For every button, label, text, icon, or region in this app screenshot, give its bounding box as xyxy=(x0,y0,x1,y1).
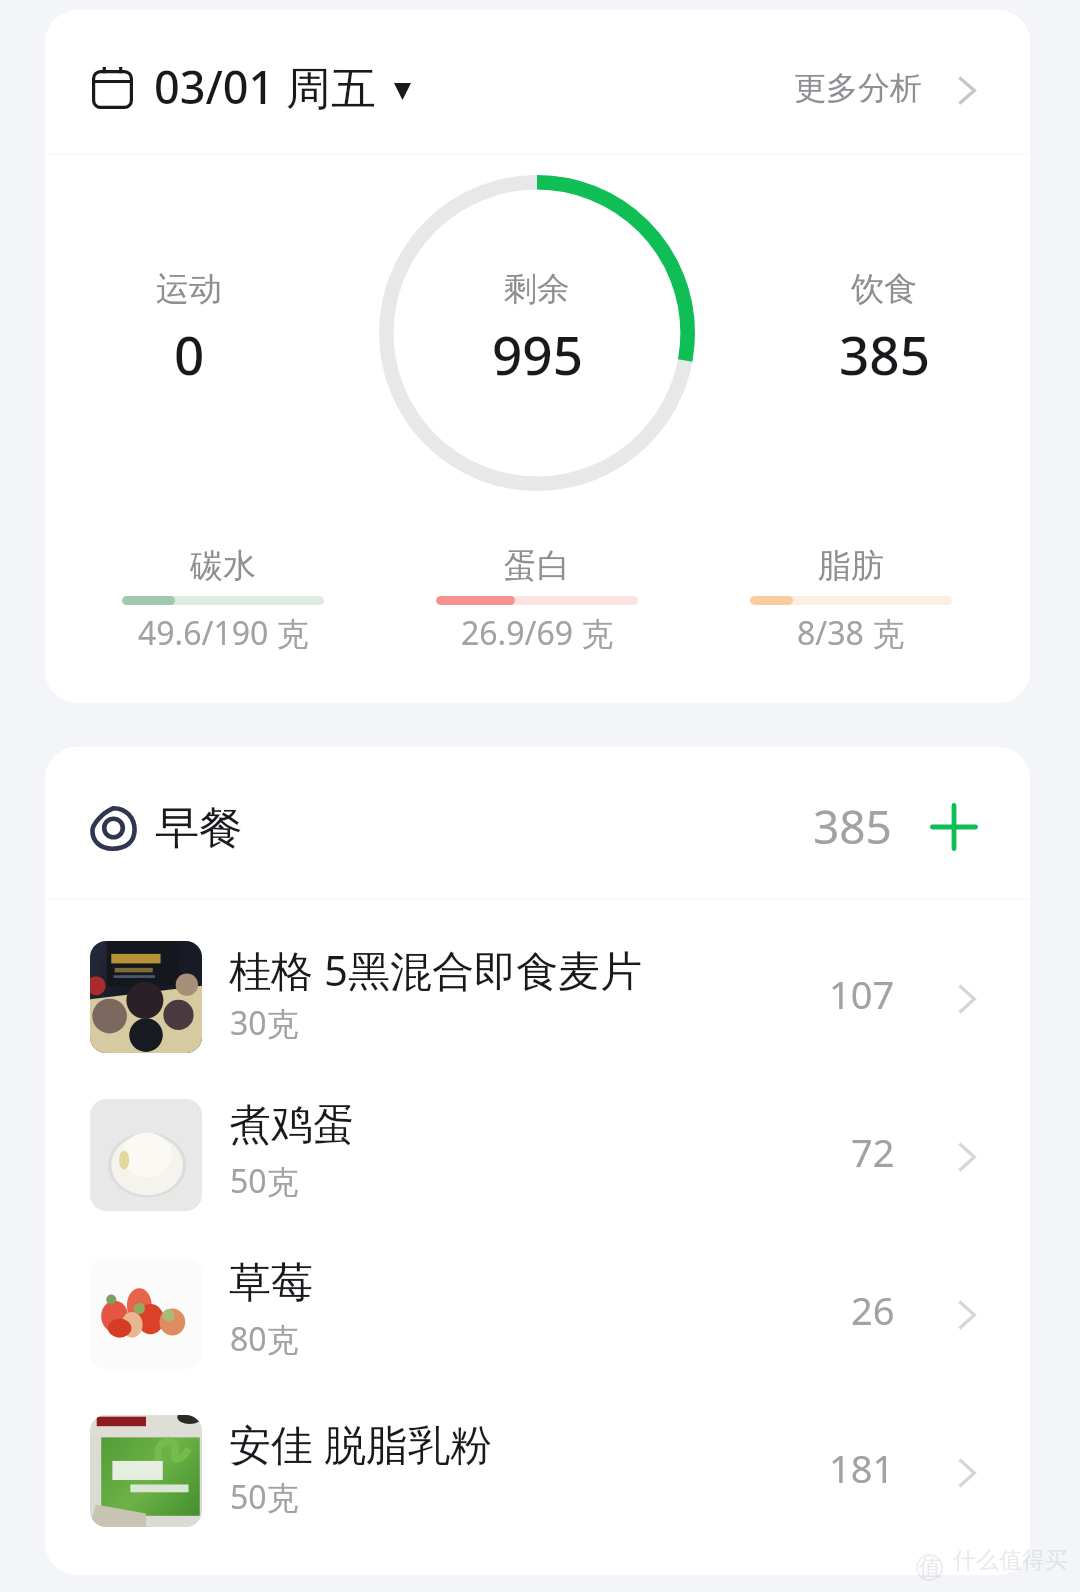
staticText: 剩余 xyxy=(504,268,570,310)
staticText: 早餐 xyxy=(155,801,243,856)
staticText: 蛋白 xyxy=(504,545,570,587)
staticText: 80克 xyxy=(230,1317,299,1361)
button[interactable]: 煮鸡蛋 xyxy=(45,1076,1030,1234)
staticText: 30克 xyxy=(230,1001,299,1045)
button[interactable]: Add breakfast food xyxy=(916,789,992,865)
staticText: 桂格 5黑混合即食麦片 xyxy=(229,941,642,998)
button[interactable]: Choose date xyxy=(65,10,425,153)
staticText: 0 xyxy=(174,318,205,390)
staticText: 49.6/190 克 xyxy=(138,611,309,655)
staticText: 26.9/69 克 xyxy=(461,611,614,655)
button[interactable]: 桂格 5黑混合即食麦片 xyxy=(45,918,1030,1076)
staticText: 饮食 xyxy=(851,268,917,310)
staticText: 值 xyxy=(919,1554,941,1581)
button[interactable] xyxy=(45,747,905,898)
staticText: 181 xyxy=(829,1442,895,1494)
staticText: 50克 xyxy=(230,1475,299,1519)
staticText: 385 xyxy=(839,318,930,390)
staticText: 385 xyxy=(813,795,892,858)
button[interactable]: 安佳 脱脂乳粉 xyxy=(45,1392,1030,1550)
staticText: 什么值得买 xyxy=(953,1546,1068,1575)
staticText: 更多分析 xyxy=(794,68,922,108)
staticText: 煮鸡蛋 xyxy=(229,1099,355,1152)
staticText: 8/38 克 xyxy=(797,611,905,655)
staticText: 03/01 周五 xyxy=(154,56,376,117)
staticText: 运动 xyxy=(156,268,222,310)
staticText: 碳水 xyxy=(190,545,256,587)
staticText: 脂肪 xyxy=(818,545,884,587)
staticText: 26 xyxy=(851,1284,895,1336)
staticText: 107 xyxy=(829,968,895,1020)
button[interactable]: 更多分析 xyxy=(780,40,995,124)
staticText: 995 xyxy=(492,318,583,390)
button[interactable]: 草莓 xyxy=(45,1234,1030,1392)
staticText: 50克 xyxy=(230,1159,299,1203)
staticText: 草莓 xyxy=(229,1257,313,1310)
staticText: 安佳 脱脂乳粉 xyxy=(229,1415,492,1472)
staticText: 72 xyxy=(851,1126,895,1178)
